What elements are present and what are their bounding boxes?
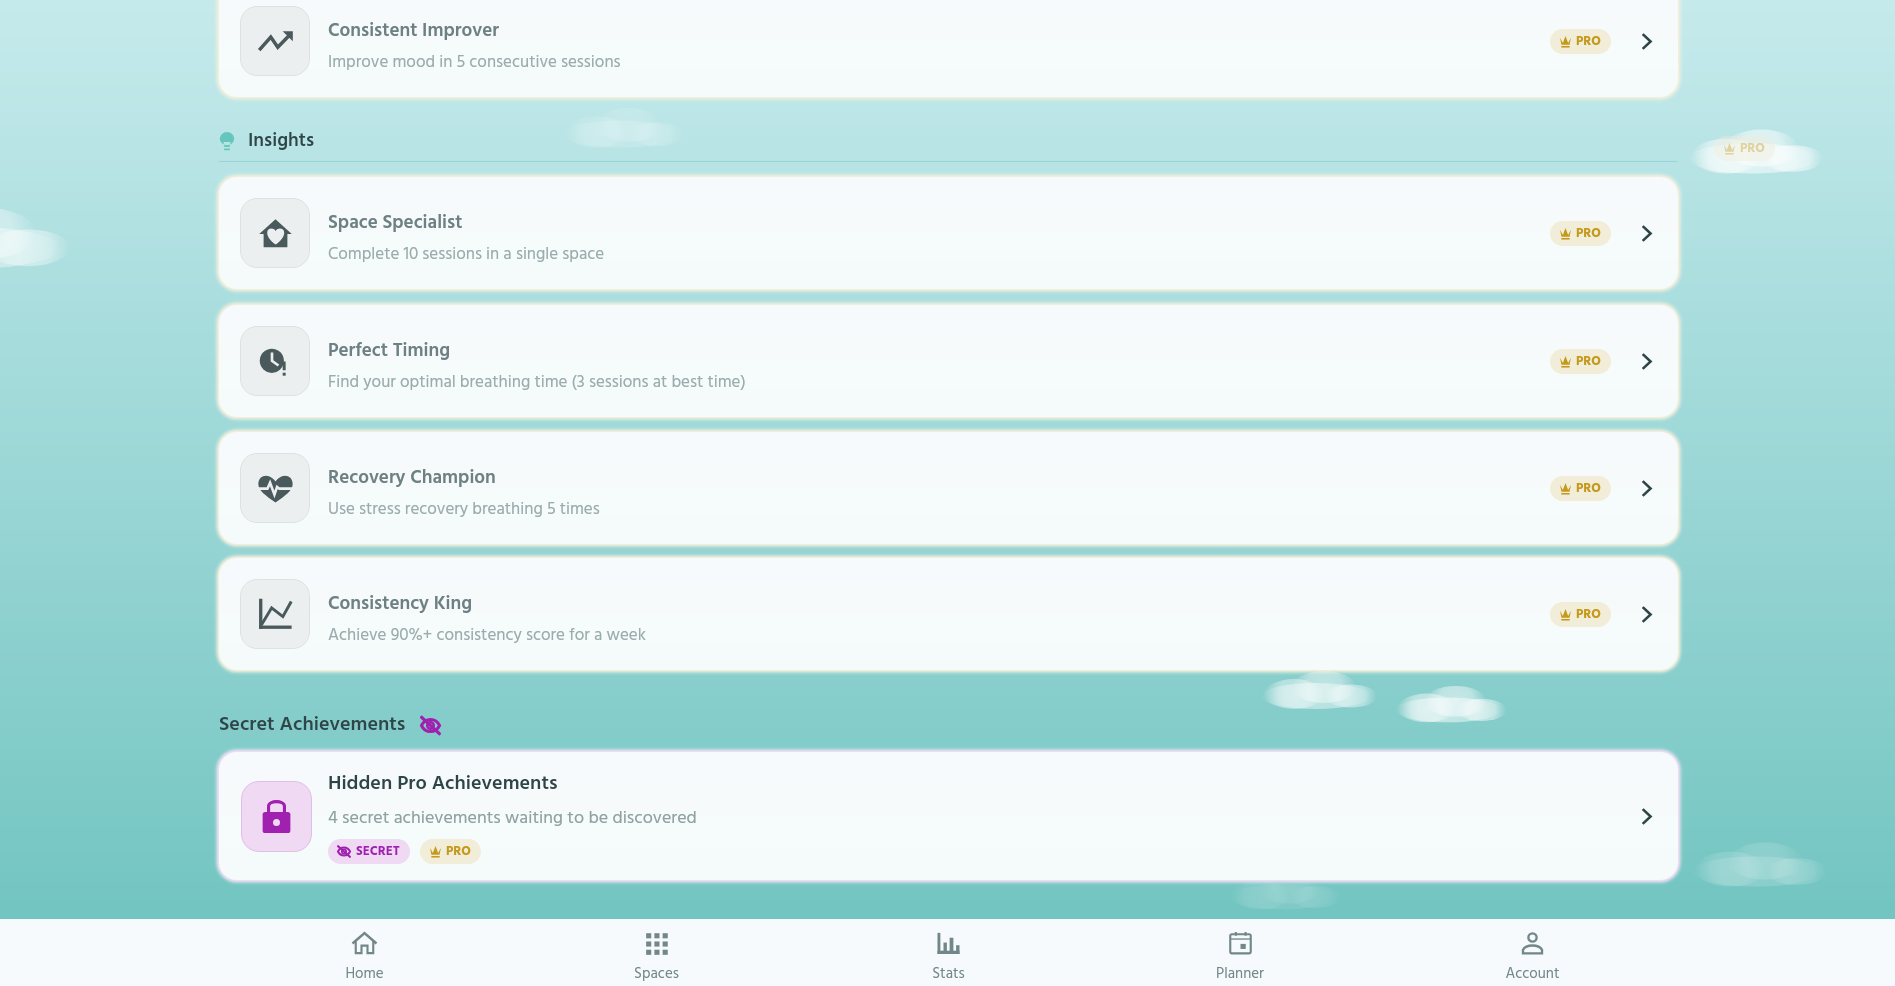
staticText: Planner bbox=[1216, 962, 1264, 986]
staticText: Account bbox=[1505, 962, 1560, 986]
button[interactable]: Spaces bbox=[510, 919, 802, 986]
staticText: Spaces bbox=[634, 962, 679, 986]
button[interactable]: Home bbox=[219, 919, 510, 986]
button[interactable]: Planner bbox=[1094, 919, 1386, 986]
other: Open bbox=[1642, 481, 1652, 496]
staticText: Improve mood in 5 consecutive sessions bbox=[328, 49, 621, 76]
other: Open bbox=[1642, 226, 1652, 241]
staticText: PRO bbox=[1576, 604, 1601, 625]
button[interactable]: Consistent Improver bbox=[219, 0, 1678, 97]
staticText: Stats bbox=[932, 962, 965, 986]
staticText: Consistency King bbox=[328, 589, 473, 619]
staticText: 4 secret achievements waiting to be disc… bbox=[328, 804, 697, 833]
staticText: PRO bbox=[1576, 223, 1601, 244]
button[interactable]: Consistency King bbox=[219, 558, 1678, 670]
staticText: Find your optimal breathing time (3 sess… bbox=[328, 369, 746, 396]
button[interactable]: Stats bbox=[802, 919, 1094, 986]
button[interactable]: Hidden Pro Achievements bbox=[219, 752, 1678, 880]
other: Open bbox=[1642, 354, 1652, 369]
other: Open bbox=[1642, 607, 1652, 622]
other: Open bbox=[1642, 809, 1652, 824]
staticText: SECRET bbox=[356, 841, 400, 862]
button[interactable]: Perfect Timing bbox=[219, 305, 1678, 417]
staticText: Consistent Improver bbox=[328, 16, 499, 46]
button[interactable]: Space Specialist bbox=[219, 177, 1678, 289]
staticText: Hidden Pro Achievements bbox=[328, 768, 558, 800]
staticText: Space Specialist bbox=[328, 208, 463, 238]
button[interactable]: Recovery Champion bbox=[219, 432, 1678, 544]
staticText: Use stress recovery breathing 5 times bbox=[328, 496, 600, 523]
staticText: Complete 10 sessions in a single space bbox=[328, 241, 605, 268]
staticText: PRO bbox=[1740, 138, 1765, 159]
staticText: Home bbox=[345, 962, 384, 986]
staticText: PRO bbox=[1576, 31, 1601, 52]
staticText: PRO bbox=[446, 841, 471, 862]
button[interactable]: Account bbox=[1386, 919, 1678, 986]
staticText: Secret Achievements bbox=[219, 709, 406, 741]
staticText: PRO bbox=[1576, 478, 1601, 499]
staticText: PRO bbox=[1576, 351, 1601, 372]
staticText: Recovery Champion bbox=[328, 463, 496, 493]
other: Open bbox=[1642, 34, 1652, 49]
staticText: Perfect Timing bbox=[328, 336, 451, 366]
staticText: Insights bbox=[248, 126, 315, 156]
staticText: Achieve 90%+ consistency score for a wee… bbox=[328, 622, 646, 649]
